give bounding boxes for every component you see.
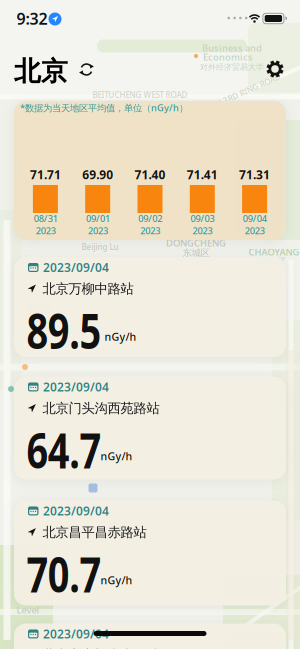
button[interactable]: 2023/09/04	[14, 500, 286, 605]
staticText: Economics	[203, 51, 253, 63]
staticText: 09/01 2023	[86, 212, 110, 237]
staticText: 71.71	[30, 166, 61, 182]
staticText: Beijing Lu	[81, 242, 118, 252]
staticText: 朝阳区	[258, 256, 285, 268]
staticText: 71.41	[187, 166, 218, 182]
button[interactable]: 2023/09/04	[14, 623, 286, 649]
staticText: 89.5	[26, 298, 120, 362]
staticText: 2023/09/04	[43, 503, 109, 519]
staticText: 2023/09/04	[43, 379, 109, 395]
staticText: 北京门头沟西苑路站	[42, 400, 159, 416]
staticText: Business and	[202, 42, 262, 54]
staticText: 71.40	[134, 166, 165, 182]
staticText: 北京永定门内大街站	[42, 647, 159, 649]
staticText: 64.7	[26, 418, 120, 482]
staticText: nGy/h	[100, 449, 132, 463]
staticText: *数据为当天地区平均值，单位（nGy/h）	[20, 101, 188, 114]
staticText: 2023/09/04	[43, 626, 109, 642]
staticText: 北京	[14, 55, 68, 88]
button[interactable]: 刷新	[77, 60, 95, 78]
staticText: 2023/09/04	[43, 259, 109, 275]
button[interactable]: 2023/09/04	[14, 376, 286, 479]
staticText: BEITUCHENG WEST ROAD	[92, 90, 187, 100]
staticText: 09/04 2023	[243, 212, 267, 237]
staticText: 对外经济贸易大学	[200, 62, 264, 72]
staticText: 70.7	[26, 542, 120, 606]
staticText: Level	[16, 604, 39, 616]
staticText: 09/03 2023	[190, 212, 214, 237]
staticText: N 3RD RING ROAD	[213, 85, 283, 95]
staticText: 西城区	[26, 304, 53, 316]
staticText: DONGCHENG	[166, 237, 226, 249]
staticText: nGy/h	[100, 573, 132, 587]
staticText: 69.90	[82, 166, 113, 182]
staticText: CHAOYANG	[248, 246, 299, 258]
staticText: 08/31 2023	[33, 212, 57, 237]
staticText: 09/02 2023	[138, 212, 162, 237]
staticText: 东城区	[182, 247, 209, 259]
button[interactable]: 2023/09/04	[14, 257, 286, 357]
staticText: 北京万柳中路站	[42, 280, 133, 297]
staticText: 北京昌平昌赤路站	[42, 524, 146, 540]
staticText: nGy/h	[104, 329, 136, 344]
button[interactable]: 设置	[263, 57, 287, 81]
staticText: 71.31	[239, 166, 270, 182]
staticText: 9:32	[16, 8, 47, 29]
